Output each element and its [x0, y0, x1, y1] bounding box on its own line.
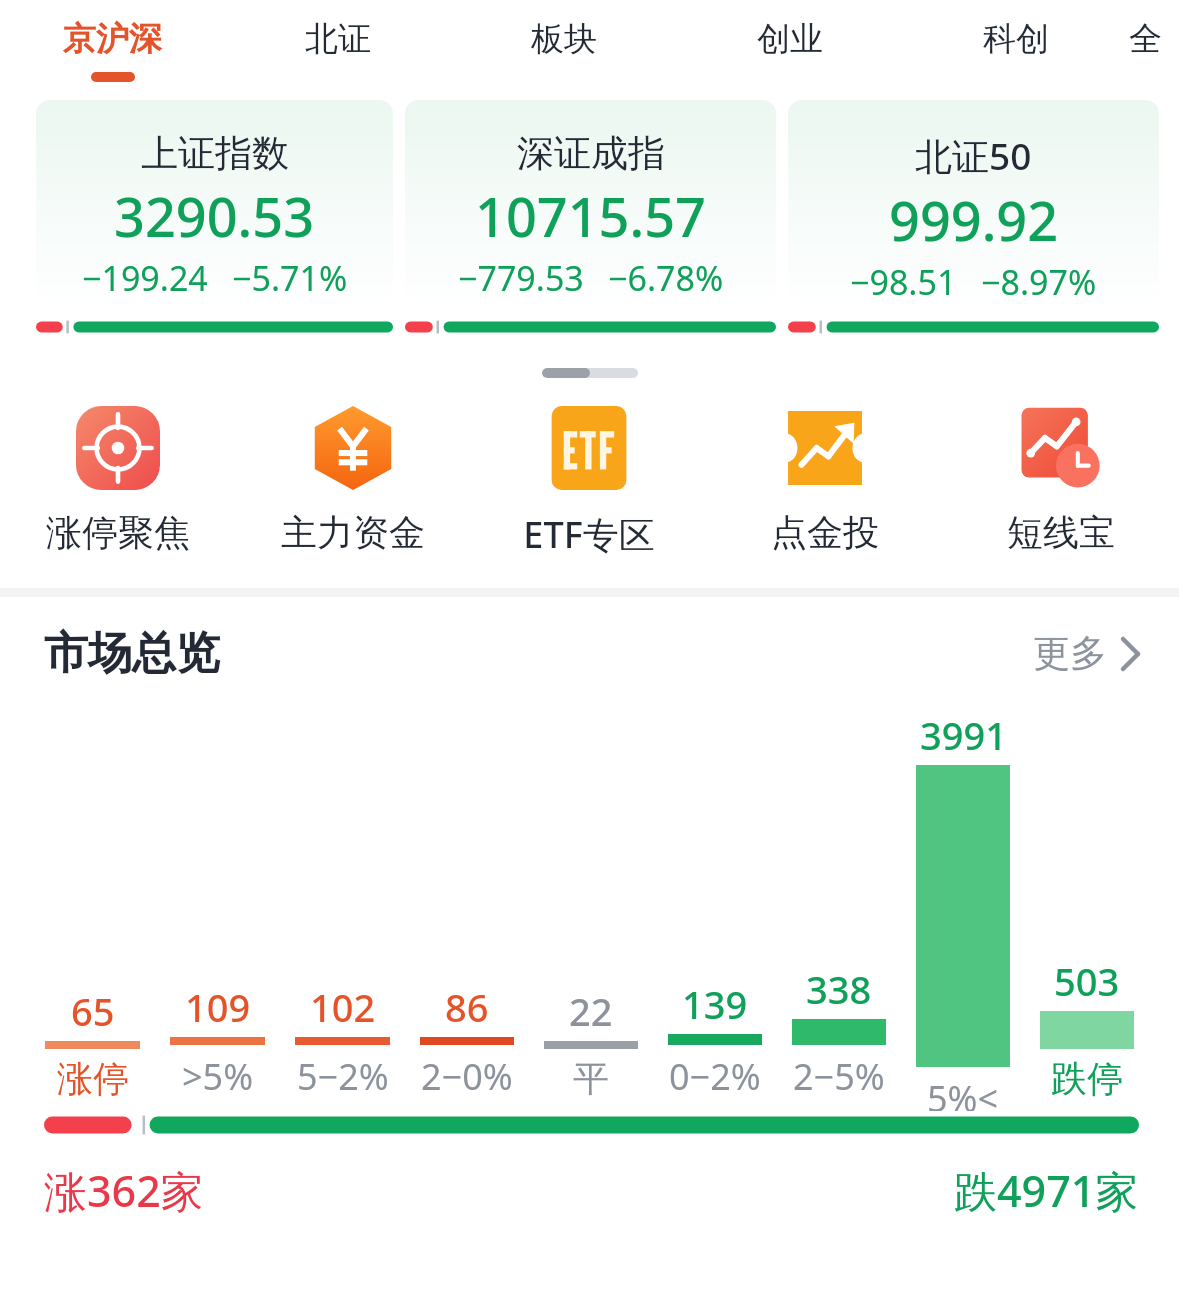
staticText: 999.92	[889, 183, 1059, 257]
button[interactable]: 109	[155, 709, 280, 1111]
button[interactable]: 点金投	[707, 406, 943, 588]
staticText: 北证50	[915, 130, 1032, 181]
button[interactable]: 深证成指	[405, 100, 776, 358]
button[interactable]: ETF专区	[471, 406, 707, 588]
staticText: 短线宝	[1007, 510, 1115, 555]
button[interactable]: 全	[1129, 0, 1179, 100]
button[interactable]: 北证50	[788, 100, 1159, 358]
staticText: 2−5%	[793, 1052, 885, 1101]
staticText: 5−2%	[297, 1052, 389, 1101]
staticText: 0−2%	[669, 1052, 761, 1101]
staticText: 涨停	[57, 1056, 129, 1101]
button[interactable]: 65	[30, 709, 155, 1111]
button[interactable]: 主力资金	[235, 406, 471, 588]
staticText: −6.78%	[608, 255, 724, 301]
staticText: 上证指数	[141, 130, 289, 177]
staticText: ETF专区	[523, 510, 655, 559]
staticText: 京沪深	[63, 18, 162, 60]
staticText: −199.24	[82, 255, 208, 301]
staticText: −5.71%	[232, 255, 348, 301]
staticText: 创业	[757, 18, 823, 60]
staticText: 3991	[920, 709, 1007, 761]
button[interactable]: 京沪深	[0, 0, 225, 100]
staticText: 全	[1129, 18, 1162, 60]
button[interactable]: 涨停聚焦	[0, 406, 235, 588]
staticText: 板块	[531, 18, 597, 60]
button[interactable]: 338	[777, 709, 901, 1111]
staticText: 503	[1054, 955, 1120, 1007]
staticText: −779.53	[458, 255, 584, 301]
staticText: 139	[682, 978, 748, 1030]
button[interactable]: 科创	[903, 0, 1129, 100]
staticText: 102	[310, 981, 376, 1033]
button[interactable]: 板块	[451, 0, 677, 100]
button[interactable]: 上证指数	[36, 100, 393, 358]
staticText: 2−0%	[421, 1052, 513, 1101]
staticText: 平	[573, 1056, 609, 1101]
staticText: 86	[445, 981, 489, 1033]
staticText: 跌4971家	[954, 1161, 1139, 1220]
button[interactable]: 139	[653, 709, 777, 1111]
staticText: 338	[806, 963, 872, 1015]
staticText: −98.51	[850, 259, 957, 305]
staticText: 10715.57	[475, 179, 706, 253]
button[interactable]: 102	[280, 709, 405, 1111]
staticText: 点金投	[771, 510, 879, 555]
button[interactable]: 北证	[225, 0, 451, 100]
staticText: 北证	[305, 18, 371, 60]
staticText: 更多	[1033, 630, 1107, 677]
staticText: 涨停聚焦	[46, 510, 190, 555]
button[interactable]: 短线宝	[943, 406, 1179, 588]
staticText: >5%	[182, 1052, 254, 1101]
staticText: 109	[185, 981, 251, 1033]
staticText: 涨362家	[44, 1161, 204, 1220]
staticText: 科创	[983, 18, 1049, 60]
button[interactable]: 创业	[677, 0, 903, 100]
button[interactable]: 3991	[901, 709, 1025, 1111]
staticText: 5%<	[927, 1074, 999, 1111]
staticText: 市场总览	[44, 626, 220, 681]
staticText: 22	[569, 985, 613, 1037]
staticText: 65	[71, 985, 115, 1037]
button[interactable]: 503	[1025, 709, 1149, 1111]
staticText: 跌停	[1051, 1056, 1123, 1101]
staticText: 深证成指	[517, 130, 665, 177]
staticText: 3290.53	[114, 179, 315, 253]
staticText: −8.97%	[981, 259, 1097, 305]
button[interactable]: 更多	[1025, 622, 1149, 685]
button[interactable]: 22	[529, 709, 653, 1111]
button[interactable]: 86	[405, 709, 529, 1111]
staticText: 主力资金	[281, 510, 425, 555]
